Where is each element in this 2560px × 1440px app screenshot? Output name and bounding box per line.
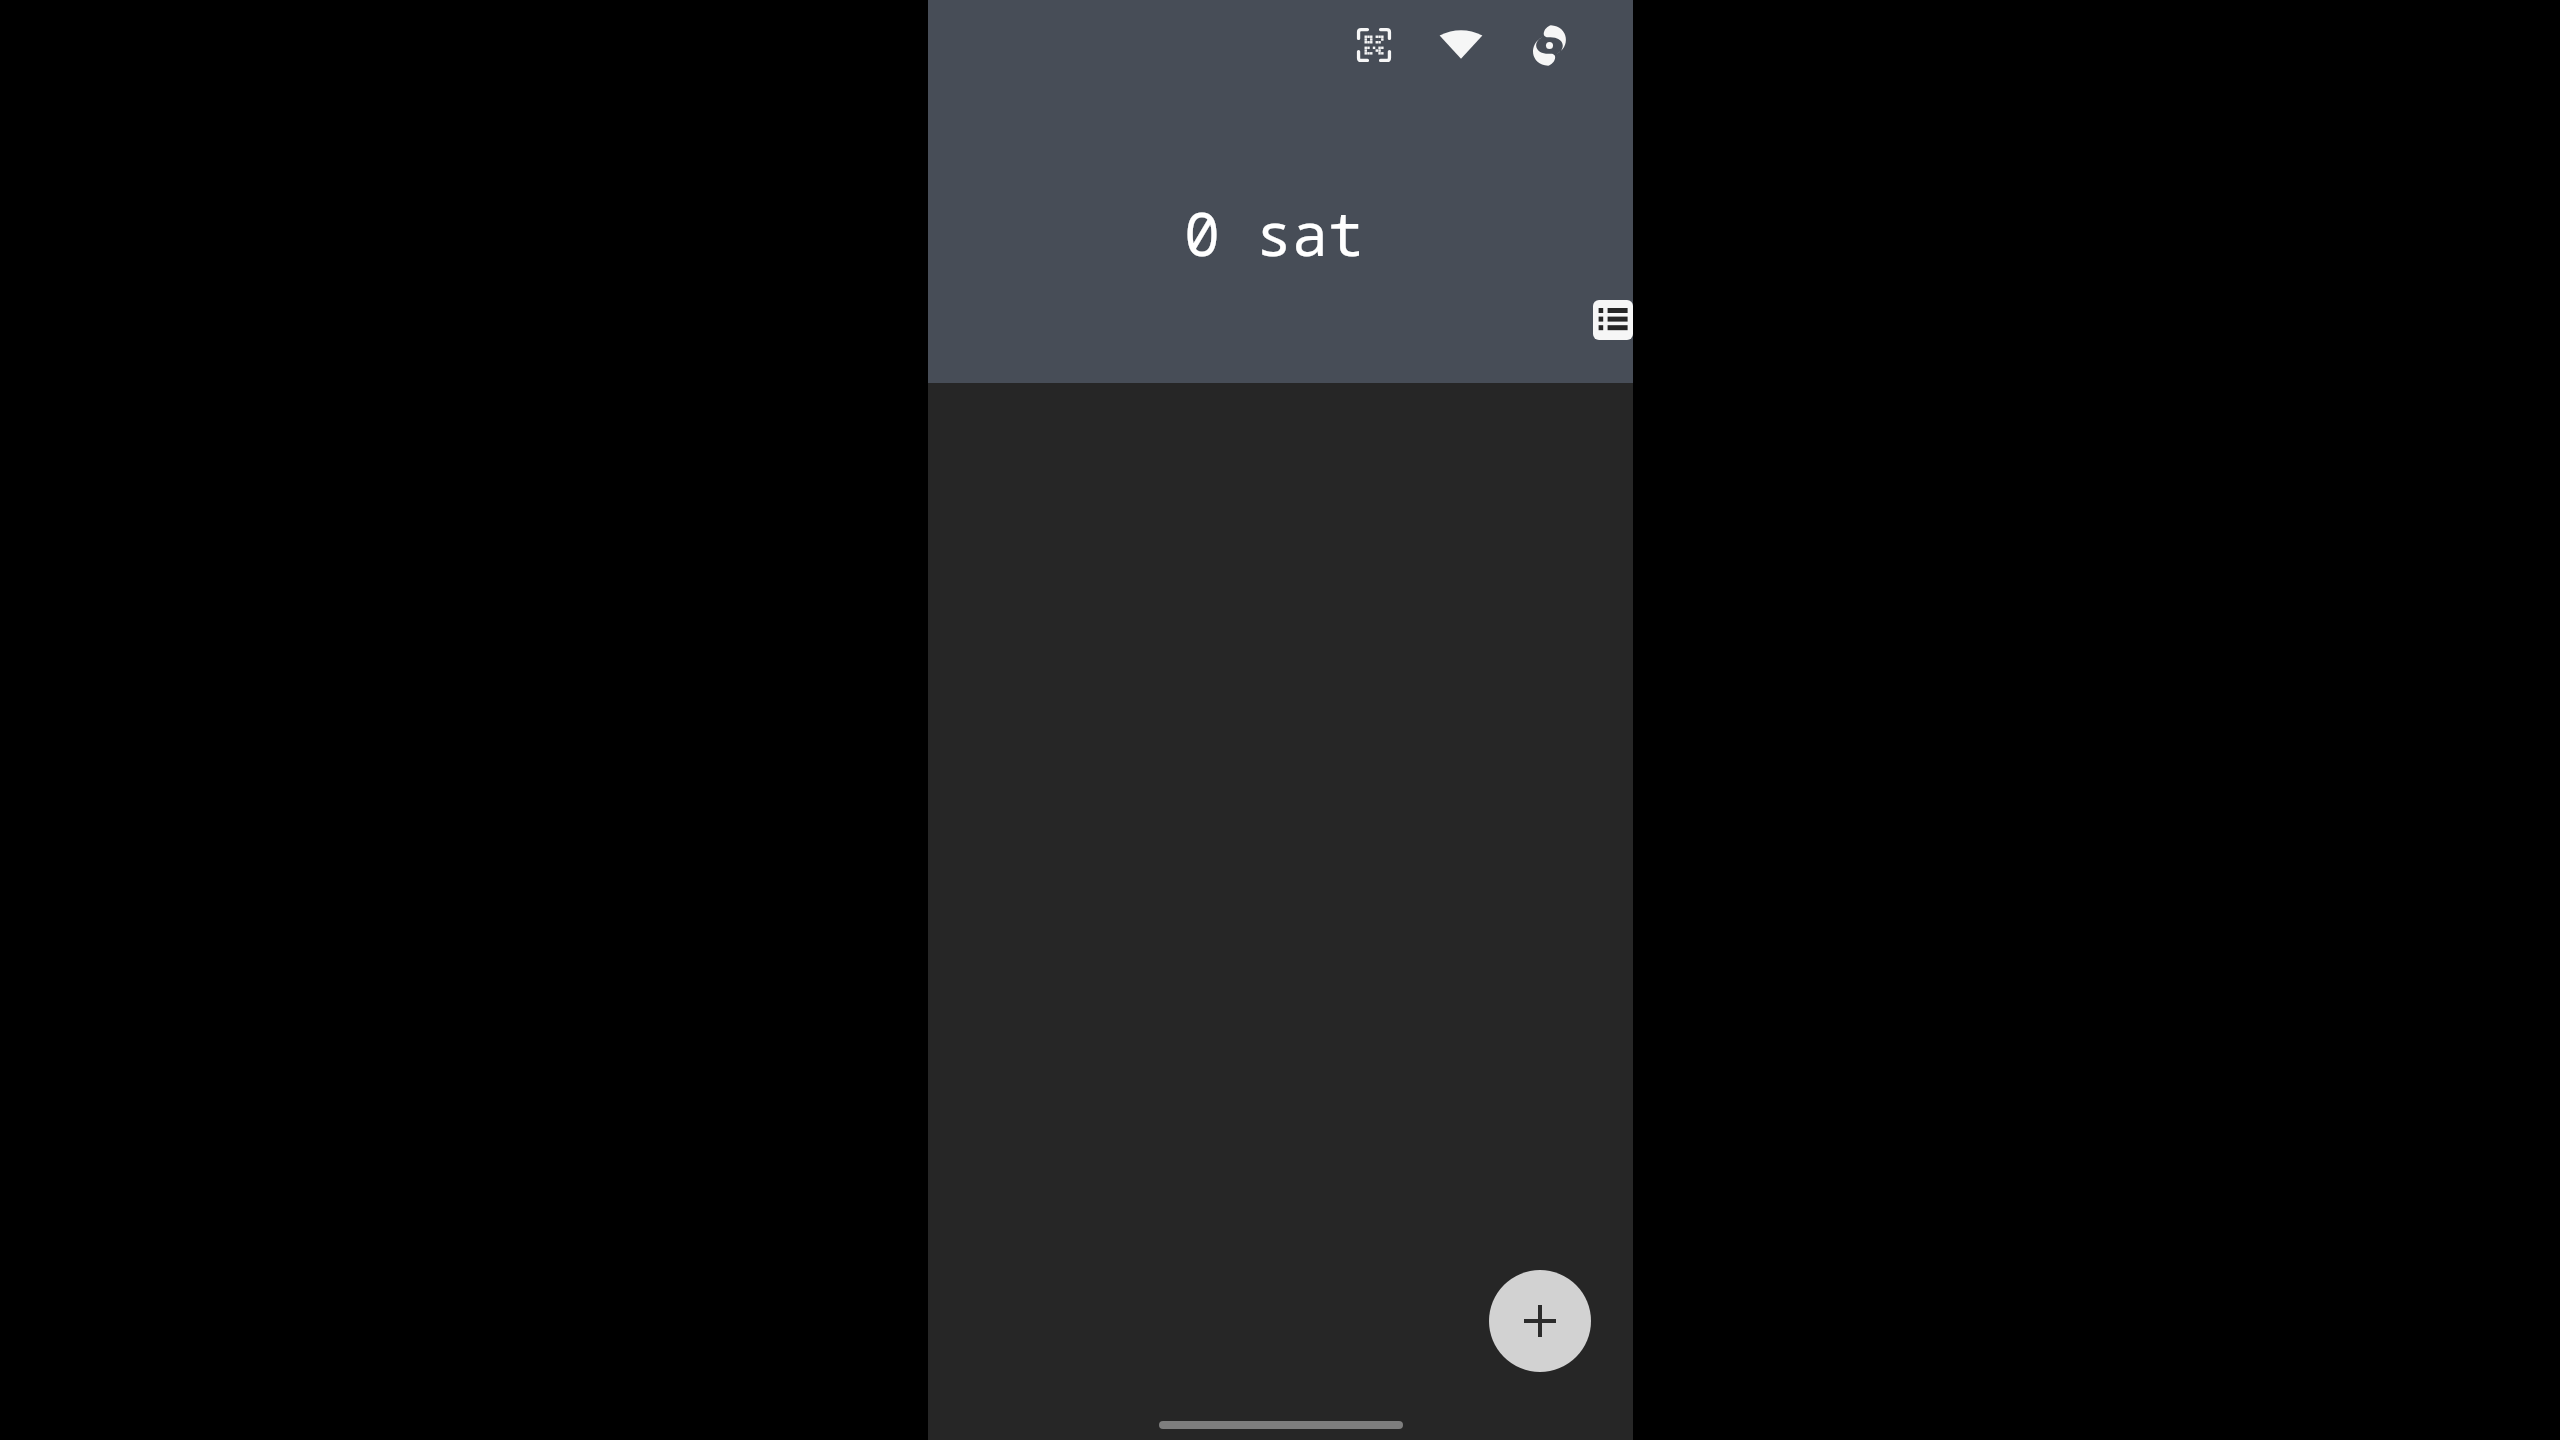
button[interactable]: Connection status (1430, 14, 1492, 76)
button[interactable]: Add (1489, 1270, 1591, 1372)
button[interactable]: Transaction list (1593, 298, 1637, 342)
button[interactable]: Scan QR code (1343, 14, 1405, 76)
button[interactable]: 0 sat (1184, 192, 1364, 274)
button[interactable]: Node status (1518, 14, 1580, 76)
